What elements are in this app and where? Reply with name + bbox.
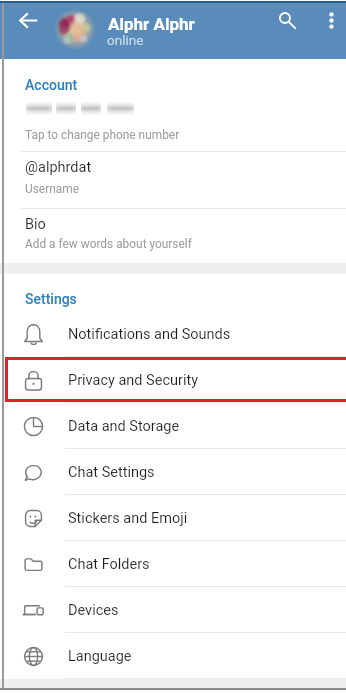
button[interactable]: More options: [310, 0, 346, 40]
staticText: Privacy and Security: [68, 372, 199, 389]
staticText: Chat Folders: [68, 556, 150, 573]
button[interactable]: Privacy and Security: [0, 357, 346, 403]
staticText: Language: [68, 648, 132, 665]
staticText: Data and Storage: [68, 418, 180, 435]
button[interactable]: Notifications and Sounds: [0, 311, 346, 357]
button[interactable]: Search: [265, 0, 310, 40]
staticText: Account: [25, 77, 78, 93]
button[interactable]: Chat Settings: [0, 449, 346, 495]
button[interactable]: Chat Folders: [0, 541, 346, 587]
staticText: Settings: [25, 291, 77, 307]
staticText: Notifications and Sounds: [68, 326, 231, 343]
button[interactable]: Data and Storage: [0, 403, 346, 449]
staticText: Add a few words about yourself: [25, 237, 192, 251]
staticText: Tap to change phone number: [25, 128, 180, 142]
staticText: Username: [25, 182, 79, 196]
staticText: Stickers and Emoji: [68, 510, 188, 527]
staticText: online: [107, 32, 144, 48]
staticText: Bio: [25, 216, 46, 233]
button[interactable]: Stickers and Emoji: [0, 495, 346, 541]
staticText: @alphrdat: [25, 159, 92, 176]
staticText: Devices: [68, 602, 119, 619]
staticText: Chat Settings: [68, 464, 155, 481]
button[interactable]: Back: [6, 0, 50, 40]
staticText: Alphr Alphr: [108, 14, 195, 34]
button[interactable]: Devices: [0, 587, 346, 633]
button[interactable]: Language: [0, 633, 346, 679]
